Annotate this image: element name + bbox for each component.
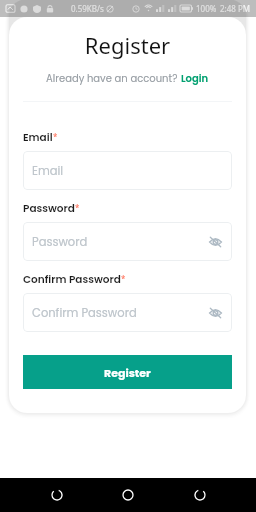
staticText: Email [23, 130, 53, 145]
staticText: * [75, 202, 80, 213]
button[interactable]: Recents [185, 480, 215, 510]
staticText: * [53, 131, 58, 142]
staticText: Confirm Password [23, 272, 121, 287]
button[interactable]: Show password [209, 308, 222, 318]
staticText: Password [32, 234, 88, 250]
staticText: Confirm Password [32, 305, 137, 321]
staticText: Already have an account? [46, 71, 181, 85]
staticText: Login [181, 71, 209, 85]
button[interactable]: Home [113, 480, 143, 510]
staticText: Password [23, 201, 75, 216]
button[interactable]: Confirm Password [23, 293, 232, 332]
button[interactable]: Email [23, 151, 232, 190]
staticText: Register [104, 365, 151, 380]
staticText: Email [32, 163, 64, 179]
staticText: 0.59KB/s [71, 3, 104, 14]
staticText: Register [9, 30, 246, 60]
staticText: * [121, 273, 126, 284]
staticText: 2:48 PM [220, 3, 251, 14]
button[interactable]: Back [42, 480, 72, 510]
button[interactable]: Register [23, 355, 232, 389]
staticText: 100% [196, 3, 217, 14]
button[interactable]: Show password [209, 237, 222, 247]
button[interactable]: Login [181, 71, 209, 85]
button[interactable]: Password [23, 222, 232, 261]
